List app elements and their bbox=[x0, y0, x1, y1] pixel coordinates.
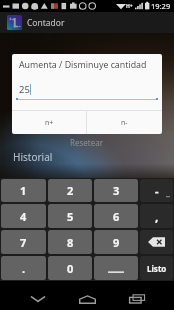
button[interactable]: . bbox=[1, 256, 46, 280]
button[interactable]: Backspace bbox=[140, 230, 173, 254]
button[interactable]: 7 bbox=[1, 230, 46, 254]
staticText: H+ bbox=[126, 3, 133, 10]
staticText: Contador bbox=[27, 17, 65, 29]
button[interactable]: Space bbox=[94, 256, 138, 280]
staticText: 4 bbox=[20, 209, 27, 224]
button[interactable]: 8 bbox=[48, 230, 92, 254]
staticText: , bbox=[155, 208, 159, 224]
staticText: 25 bbox=[19, 83, 30, 96]
button[interactable]: n+ bbox=[12, 111, 86, 134]
staticText: 3 bbox=[113, 183, 120, 198]
button[interactable]: Home bbox=[75, 288, 99, 310]
staticText: Historial bbox=[13, 150, 53, 164]
button[interactable]: 4 bbox=[1, 204, 46, 228]
staticText: n+ bbox=[45, 118, 54, 128]
button[interactable]: 2 bbox=[48, 179, 92, 202]
staticText: 5 bbox=[67, 209, 74, 224]
staticText: 7 bbox=[20, 235, 27, 250]
button[interactable]: 6 bbox=[94, 204, 138, 228]
button[interactable]: , bbox=[140, 204, 173, 228]
staticText: 0 bbox=[67, 261, 74, 276]
button[interactable]: Listo bbox=[140, 256, 173, 280]
button[interactable]: 3 bbox=[94, 179, 138, 202]
staticText: Resetear bbox=[70, 137, 104, 148]
button[interactable]: 1 bbox=[1, 179, 46, 202]
button[interactable]: Resetear bbox=[66, 134, 108, 151]
staticText: . bbox=[22, 261, 26, 276]
button[interactable]: 0 bbox=[48, 256, 92, 280]
staticText: 6 bbox=[113, 209, 120, 224]
button[interactable]: 5 bbox=[48, 204, 92, 228]
button[interactable]: Back bbox=[0, 288, 75, 310]
button[interactable]: Recents bbox=[99, 288, 174, 310]
staticText: 2 bbox=[67, 183, 74, 198]
staticText: Listo bbox=[147, 263, 167, 274]
staticText: Aumenta / Disminuye cantidad bbox=[19, 59, 147, 71]
staticText: 8 bbox=[67, 235, 74, 250]
staticText: 1 bbox=[20, 183, 27, 198]
staticText: 9 bbox=[113, 235, 120, 250]
staticText: n- bbox=[121, 118, 128, 128]
button[interactable]: - bbox=[140, 179, 173, 202]
button[interactable]: n- bbox=[87, 111, 162, 134]
button[interactable]: 9 bbox=[94, 230, 138, 254]
staticText: 19:29 bbox=[151, 1, 171, 11]
staticText: - bbox=[155, 183, 159, 198]
